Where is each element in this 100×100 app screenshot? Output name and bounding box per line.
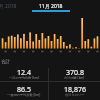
button[interactable]: 370.8 — [49, 68, 100, 81]
staticText: 11月 2018 — [39, 3, 63, 10]
button[interactable]: 10月 2018 — [0, 0, 21, 12]
button[interactable]: 合計 — [1, 59, 11, 65]
staticText: 合計距離 [km] — [64, 76, 85, 79]
staticText: 一週間の平均歩数 [km] — [7, 93, 41, 97]
button[interactable]: 86.5 — [0, 82, 48, 100]
staticText: 合計カロリー — [65, 93, 85, 97]
staticText: 86.5 — [17, 85, 31, 95]
staticText: 12.4 — [17, 68, 31, 78]
button[interactable]: 18,876 — [49, 82, 100, 100]
button[interactable]: 11月 2018 — [32, 0, 70, 12]
staticText: 18,876 — [64, 85, 86, 95]
staticText: 370.8 — [66, 68, 84, 78]
staticText: 10月 2018 — [0, 3, 17, 10]
staticText: 一日の平均歩数 [km] — [9, 76, 39, 79]
button[interactable]: 12.4 — [0, 68, 48, 81]
